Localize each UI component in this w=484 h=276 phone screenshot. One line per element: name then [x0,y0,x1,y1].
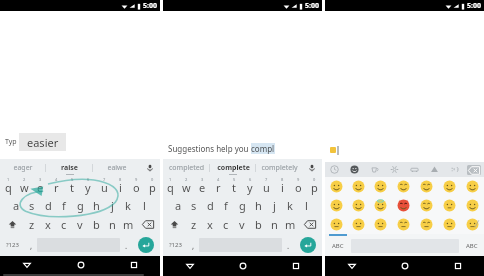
button[interactable]: 2 [16,176,32,196]
button[interactable]: Shift [0,215,24,234]
button[interactable]: Emoji [347,196,369,215]
button[interactable]: ?123 [163,234,187,256]
button[interactable]: 5 [64,176,80,196]
button[interactable]: 9 [290,176,306,196]
button[interactable]: h [250,196,266,215]
button[interactable]: l [298,196,314,215]
button[interactable]: b [88,215,104,234]
button[interactable]: 7 [258,176,274,196]
button[interactable]: Shift [163,215,186,234]
button[interactable]: raise [46,159,93,176]
button[interactable]: a [170,196,186,215]
button[interactable]: Emoji [369,215,392,234]
button[interactable]: ?123 [0,234,25,256]
button[interactable]: Emoji [461,215,484,234]
button[interactable]: Enter [300,237,316,253]
button[interactable]: Smileys [344,162,364,177]
button[interactable]: Emoji [461,196,484,215]
button[interactable]: 0 [144,176,160,196]
button[interactable]: Backspace [136,215,160,234]
button[interactable]: Symbols [424,162,444,177]
button[interactable]: Home [378,256,431,276]
button[interactable]: . [120,234,132,256]
button[interactable]: 0 [306,176,322,196]
button[interactable]: Recents [269,256,322,276]
button[interactable]: , [187,234,199,256]
button[interactable]: c [218,215,234,234]
button[interactable]: Emoji [415,215,438,234]
button[interactable]: Back [325,256,378,276]
button[interactable]: l [136,196,152,215]
button[interactable]: z [24,215,40,234]
button[interactable]: s [24,196,40,215]
button[interactable]: 5 [226,176,242,196]
button[interactable]: 2 [178,176,194,196]
button[interactable]: c [56,215,72,234]
button[interactable]: Emoji [325,215,347,234]
button[interactable]: d [40,196,56,215]
button[interactable]: Emoji [438,215,461,234]
button[interactable]: a [8,196,24,215]
button[interactable]: Emoji [415,177,438,196]
button[interactable]: Recent [325,162,344,177]
button[interactable]: completely [256,159,302,176]
button[interactable]: 8 [274,176,290,196]
button[interactable]: ABC [325,236,351,256]
button[interactable]: 1 [0,176,16,196]
button[interactable]: , [25,234,37,256]
button[interactable]: Emoji [347,215,369,234]
button[interactable]: s [186,196,202,215]
button[interactable]: Voice input [302,159,322,176]
button[interactable]: eaiwe [93,159,140,176]
button[interactable]: m [282,215,298,234]
button[interactable]: 3 [32,176,48,196]
button[interactable]: 6 [80,176,96,196]
button[interactable]: k [282,196,298,215]
button[interactable]: v [72,215,88,234]
button[interactable]: Emoji [392,196,415,215]
button[interactable]: h [88,196,104,215]
button[interactable]: Emoji [392,177,415,196]
button[interactable]: d [202,196,218,215]
button[interactable]: Recents [431,256,484,276]
button[interactable]: z [186,215,202,234]
button[interactable]: n [266,215,282,234]
button[interactable]: 9 [128,176,144,196]
button[interactable]: Emoji [438,196,461,215]
button[interactable]: Nature [384,162,404,177]
button[interactable]: Emoji [461,177,484,196]
button[interactable]: Backspace [464,162,484,177]
button[interactable]: m [120,215,136,234]
button[interactable]: Emoji [325,196,347,215]
button[interactable]: v [234,215,250,234]
button[interactable]: Emoji [438,177,461,196]
button[interactable]: Travel [404,162,424,177]
button[interactable]: Emoji [369,196,392,215]
button[interactable]: Voice input [140,159,160,176]
button[interactable]: complete [210,159,256,176]
button[interactable]: k [120,196,136,215]
button[interactable]: Enter [138,237,154,253]
button[interactable]: 7 [96,176,112,196]
button[interactable]: f [218,196,234,215]
button[interactable]: n [104,215,120,234]
button[interactable]: 4 [48,176,64,196]
button[interactable]: f [56,196,72,215]
button[interactable]: 3 [194,176,210,196]
button[interactable]: x [202,215,218,234]
button[interactable]: Home [54,256,107,274]
button[interactable]: Home [216,256,269,276]
button[interactable]: . [282,234,294,256]
button[interactable]: Emoticons [444,162,464,177]
button[interactable]: completed [163,159,210,176]
button[interactable]: eager [0,159,46,176]
button[interactable]: 1 [163,176,178,196]
button[interactable]: 8 [112,176,128,196]
button[interactable]: Emoji [392,215,415,234]
button[interactable]: j [104,196,120,215]
button[interactable]: Back [163,256,216,276]
button[interactable]: Food [364,162,384,177]
